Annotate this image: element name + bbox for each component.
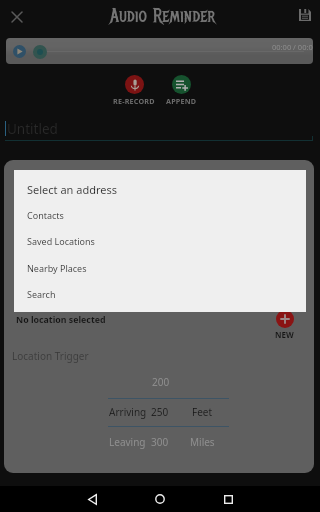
staticText: RE-RECORD — [113, 96, 155, 106]
button[interactable]: Back — [75, 486, 109, 512]
staticText: NEW — [275, 329, 294, 340]
button[interactable]: Play — [13, 45, 26, 58]
button[interactable]: Recents — [211, 486, 245, 512]
staticText: Feet — [192, 405, 213, 419]
staticText: Contacts — [27, 209, 64, 221]
button[interactable]: Save — [293, 3, 317, 27]
staticText: Location Trigger — [12, 349, 89, 363]
button[interactable]: Saved Locations — [14, 228, 306, 254]
button[interactable]: RE-RECORD — [113, 75, 155, 106]
button[interactable]: Contacts — [14, 202, 306, 228]
button[interactable]: New location — [275, 310, 294, 340]
staticText: Search — [27, 288, 56, 300]
staticText: Miles — [190, 435, 215, 449]
staticText: 300 — [151, 435, 169, 449]
staticText: Audio Reminder — [110, 5, 215, 27]
staticText: 250 — [151, 405, 169, 419]
button[interactable]: Nearby Places — [14, 255, 306, 281]
staticText: Saved Locations — [27, 235, 95, 247]
button[interactable]: Home — [143, 486, 177, 512]
staticText: Select an address — [27, 182, 117, 197]
staticText: Leaving — [109, 435, 146, 449]
button[interactable]: Close — [5, 5, 29, 29]
staticText: APPEND — [166, 96, 197, 106]
staticText: Untitled — [7, 120, 58, 138]
button[interactable]: APPEND — [166, 75, 197, 106]
staticText: 00:00 / 00:01 — [272, 42, 313, 52]
button[interactable]: Record — [33, 45, 47, 59]
staticText: Arriving — [109, 405, 147, 419]
staticText: 200 — [152, 375, 170, 389]
staticText: Nearby Places — [27, 262, 87, 274]
button[interactable]: Search — [14, 281, 306, 307]
staticText: No location selected — [16, 314, 106, 326]
